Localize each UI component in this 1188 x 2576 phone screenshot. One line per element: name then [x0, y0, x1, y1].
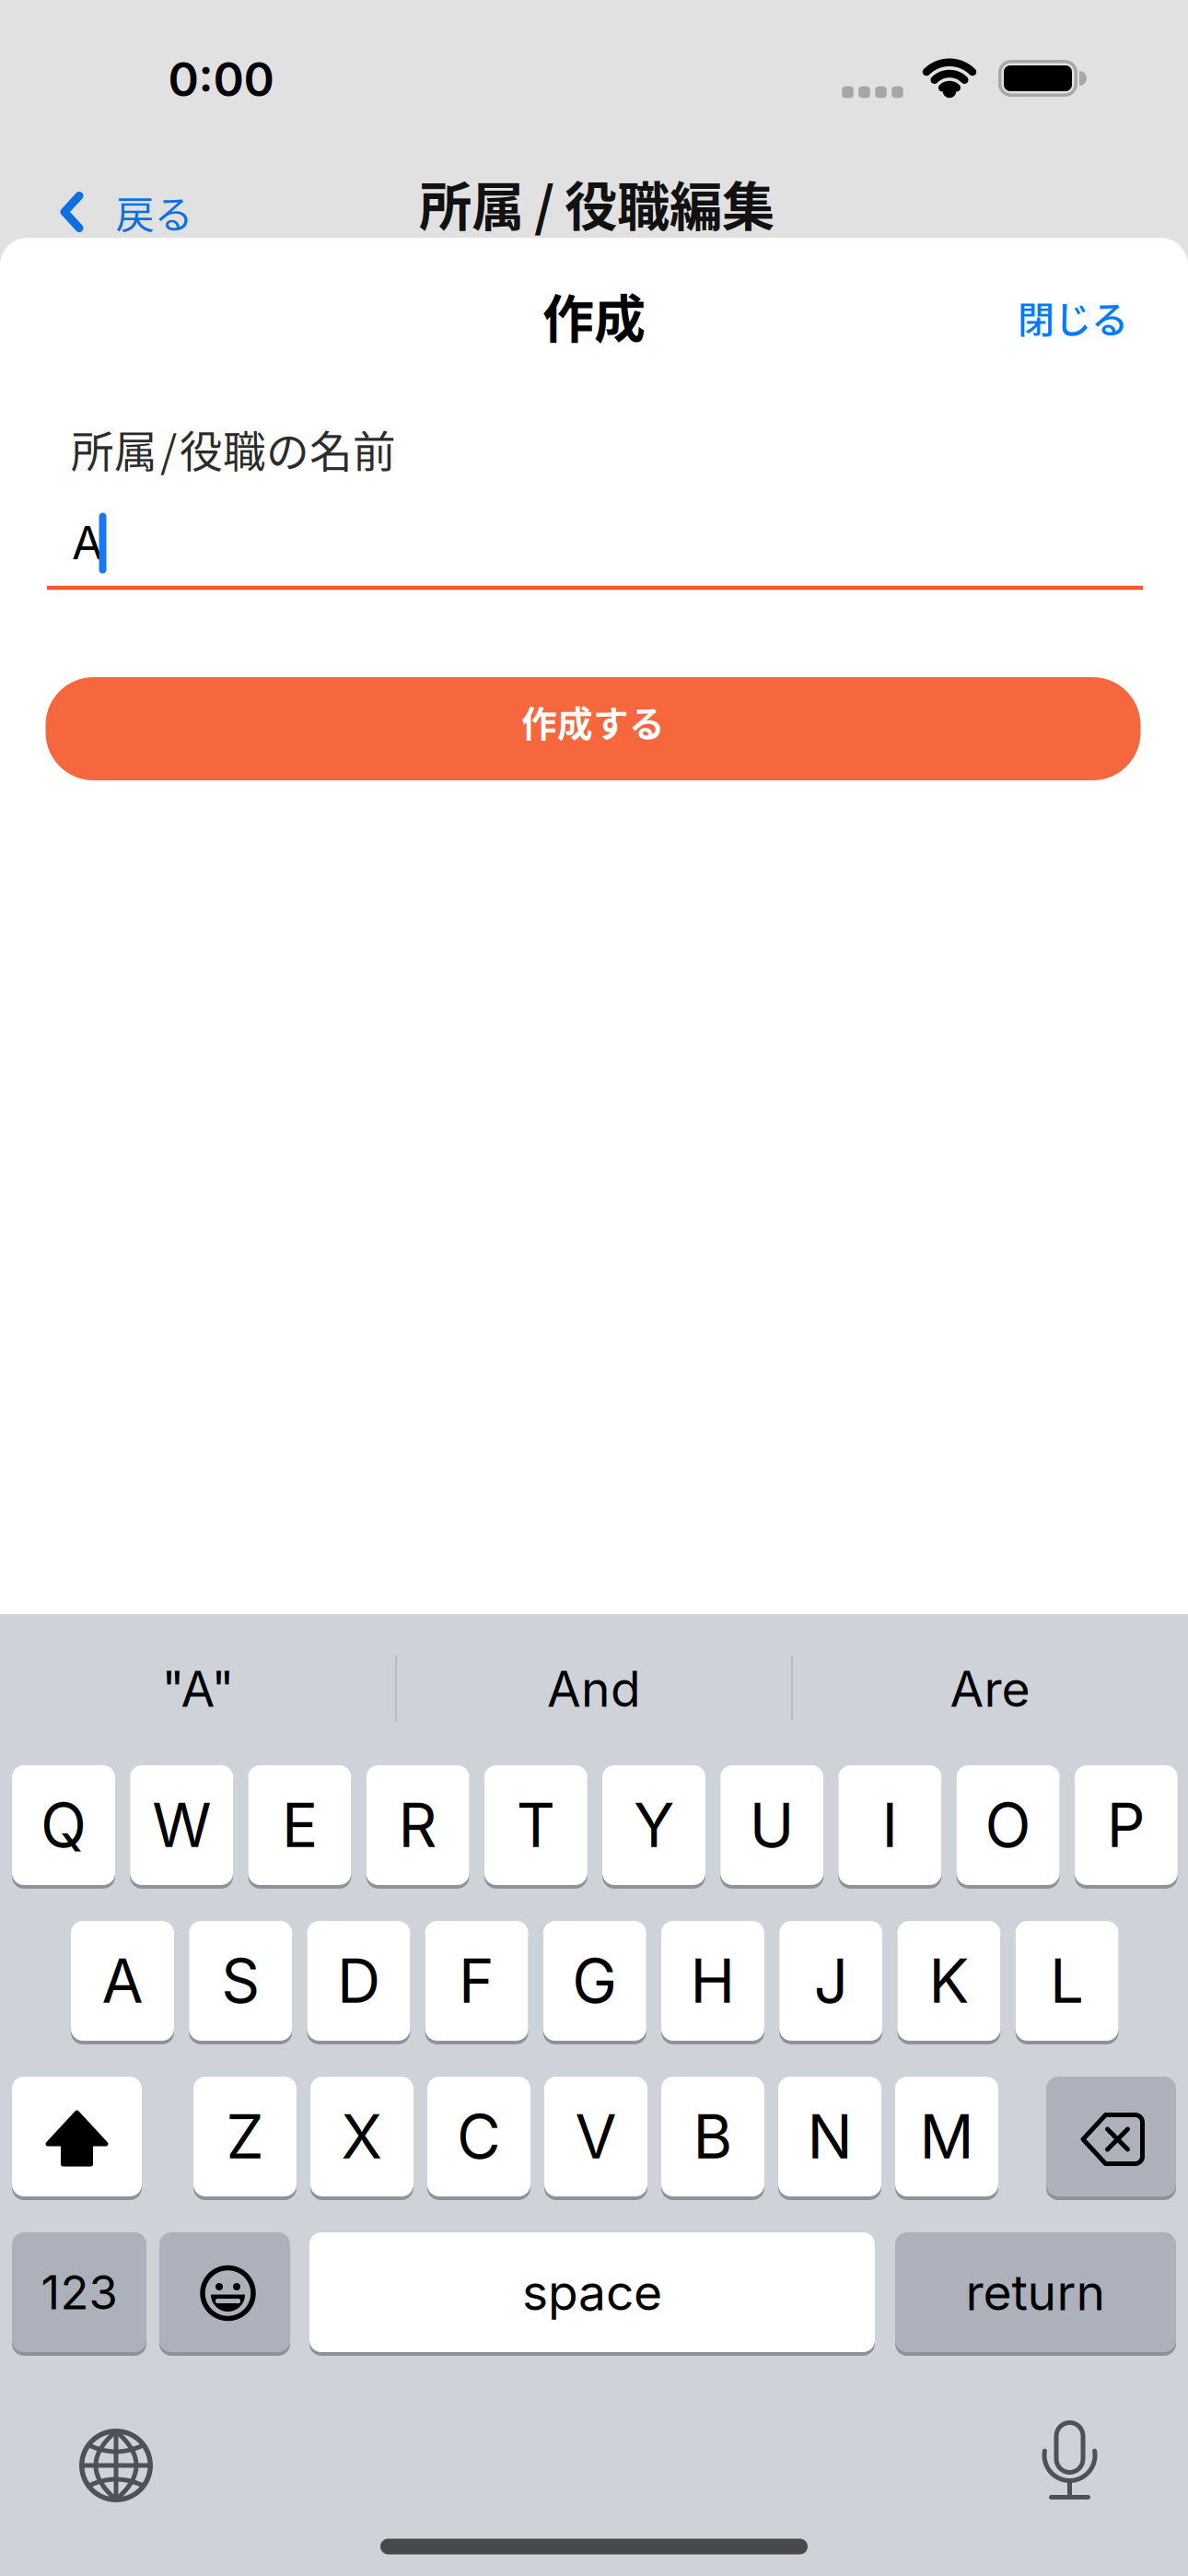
staticText: S [221, 1944, 260, 2017]
staticText: G [572, 1944, 617, 2017]
button[interactable]: space [309, 2231, 875, 2354]
staticText: 0:00 [168, 51, 274, 107]
button[interactable]: A [71, 1919, 174, 2043]
staticText: Q [41, 1789, 87, 1862]
button[interactable]: F [425, 1919, 528, 2043]
button[interactable]: I [838, 1763, 942, 1887]
staticText: C [457, 2100, 501, 2173]
staticText: Z [226, 2100, 264, 2173]
button[interactable]: Are [797, 1638, 1183, 1739]
staticText: O [985, 1789, 1031, 1862]
staticText: B [693, 2100, 733, 2173]
button[interactable]: P [1075, 1763, 1178, 1887]
button[interactable]: H [661, 1919, 764, 2043]
button[interactable]: And [401, 1638, 787, 1739]
staticText: space [522, 2262, 662, 2322]
button[interactable]: M [895, 2075, 998, 2198]
staticText: E [282, 1789, 318, 1862]
staticText: H [690, 1944, 735, 2017]
button[interactable]: Q [12, 1763, 115, 1887]
staticText: V [575, 2100, 617, 2173]
staticText: T [516, 1789, 555, 1862]
button[interactable]: S [189, 1919, 292, 2043]
staticText: N [807, 2100, 852, 2173]
staticText: R [398, 1789, 437, 1862]
button[interactable]: 作成する [46, 677, 1141, 780]
button[interactable]: L [1015, 1919, 1119, 2043]
button[interactable]: Delete [1046, 2075, 1176, 2198]
button[interactable]: J [779, 1919, 882, 2043]
staticText: 閉じる [1018, 290, 1128, 344]
button[interactable]: W [130, 1763, 233, 1887]
staticText: "A" [162, 1659, 234, 1718]
button[interactable]: Emoji [159, 2231, 290, 2354]
button[interactable]: return [895, 2231, 1176, 2354]
staticText: 作成 [542, 278, 646, 352]
button[interactable]: G [543, 1919, 646, 2043]
staticText: I [882, 1789, 898, 1862]
button[interactable]: K [897, 1919, 1000, 2043]
button[interactable]: B [661, 2075, 764, 2198]
button[interactable]: "A" [5, 1638, 391, 1739]
staticText: And [547, 1659, 641, 1718]
staticText: M [920, 2100, 974, 2173]
staticText: L [1050, 1944, 1084, 2017]
staticText: 戻る [116, 184, 193, 240]
staticText: W [152, 1789, 211, 1862]
staticText: K [929, 1944, 969, 2017]
button[interactable]: 戻る [60, 184, 193, 240]
button[interactable]: Z [193, 2075, 297, 2198]
staticText: 123 [41, 2264, 117, 2320]
staticText: D [337, 1944, 380, 2017]
button[interactable]: C [427, 2075, 530, 2198]
button[interactable]: O [956, 1763, 1060, 1887]
staticText: J [814, 1944, 848, 2017]
button[interactable]: X [310, 2075, 413, 2198]
button[interactable]: Y [602, 1763, 705, 1887]
staticText: Are [950, 1659, 1030, 1718]
staticText: A [72, 515, 103, 570]
staticText: return [966, 2262, 1106, 2322]
staticText: F [459, 1944, 495, 2017]
staticText: U [749, 1789, 794, 1862]
button[interactable]: N [778, 2075, 881, 2198]
staticText: 作成する [521, 696, 665, 747]
button[interactable]: 123 [12, 2231, 146, 2354]
button[interactable]: Next keyboard [77, 2427, 155, 2504]
staticText: Y [634, 1789, 674, 1862]
button[interactable]: R [366, 1763, 469, 1887]
button[interactable]: D [307, 1919, 410, 2043]
staticText: 所属 / 役職の名前 [71, 418, 396, 480]
button[interactable]: U [720, 1763, 823, 1887]
staticText: P [1107, 1789, 1145, 1862]
button[interactable]: Shift [12, 2075, 142, 2198]
button[interactable]: T [484, 1763, 587, 1887]
staticText: A [102, 1944, 143, 2017]
button[interactable]: E [248, 1763, 351, 1887]
staticText: 所属 / 役職編集 [419, 164, 775, 241]
button[interactable]: 閉じる [1018, 290, 1128, 344]
button[interactable]: Dictation [1042, 2420, 1097, 2501]
button[interactable]: V [544, 2075, 647, 2198]
staticText: X [341, 2100, 383, 2173]
